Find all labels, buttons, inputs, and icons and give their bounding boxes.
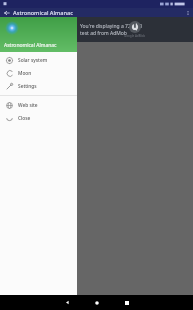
button[interactable]: Navigate up (0, 8, 13, 17)
staticText: Settings (18, 83, 37, 90)
button[interactable]: Moon (0, 67, 77, 80)
button[interactable]: Back (52, 295, 82, 310)
button[interactable]: Web site (0, 99, 77, 112)
button[interactable]: Astronomical Almanac (0, 17, 77, 52)
staticText: Solar system (18, 57, 48, 64)
button[interactable]: Solar system (0, 54, 77, 67)
button[interactable]: More options (182, 8, 193, 17)
button[interactable]: Home (82, 295, 112, 310)
button[interactable]: You're displaying a 728x90 (0, 17, 193, 42)
button[interactable]: Recent apps (112, 295, 142, 310)
staticText: You're displaying a 728x90 (80, 23, 143, 30)
staticText: Web site (18, 102, 38, 109)
staticText: Close (18, 115, 31, 122)
staticText: Astronomical Almanac (4, 42, 57, 49)
staticText: Astronomical Almanac (13, 9, 73, 17)
button[interactable]: Close (0, 112, 77, 125)
staticText: Moon (18, 70, 32, 77)
staticText: Google AdMob (124, 34, 146, 38)
staticText: test ad from AdMob (80, 30, 127, 37)
button[interactable]: Settings (0, 80, 77, 93)
